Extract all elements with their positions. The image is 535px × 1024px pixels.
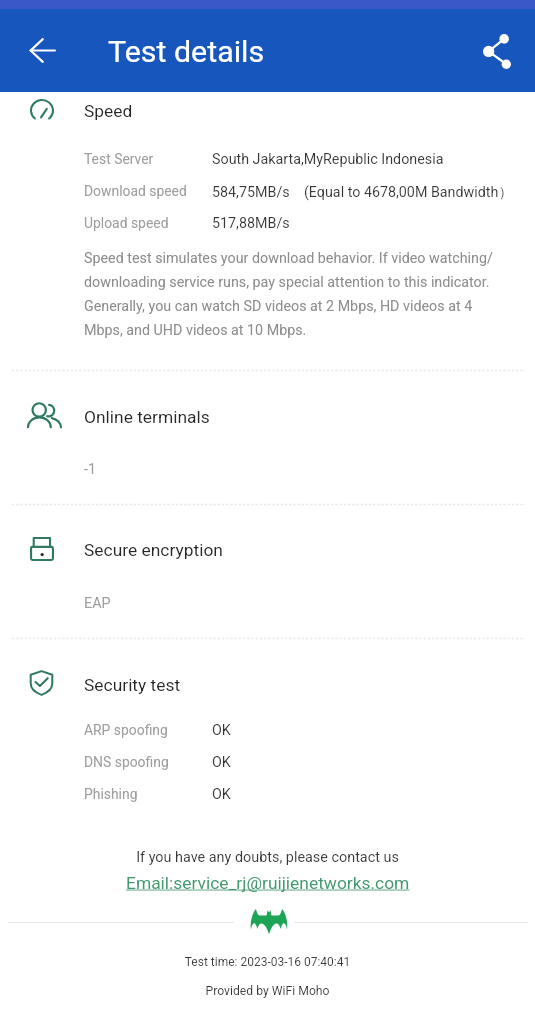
staticText: Secure encryption <box>84 540 223 560</box>
staticText: Test details <box>108 34 265 70</box>
staticText: Download speed <box>84 183 187 199</box>
staticText: 517,88MB/s <box>212 215 290 232</box>
staticText: Phishing <box>84 786 138 802</box>
button[interactable]: Share <box>474 28 519 74</box>
staticText: Upload speed <box>84 215 169 231</box>
staticText: ARP spoofing <box>84 722 168 738</box>
staticText: Test Server <box>84 151 154 167</box>
staticText: 584,75MB/s (Equal to 4678,00M Bandwidth） <box>212 183 513 201</box>
staticText: Security test <box>84 675 181 695</box>
staticText: OK <box>212 754 231 771</box>
staticText: Online terminals <box>84 407 210 427</box>
staticText: Speed <box>84 101 133 121</box>
staticText: Provided by WiFi Moho <box>0 984 535 998</box>
staticText: If you have any doubts, please contact u… <box>0 849 535 866</box>
staticText: Speed test simulates your download behav… <box>84 250 493 339</box>
staticText: Test time: 2023-03-16 07:40:41 <box>0 955 535 969</box>
button[interactable]: Back <box>19 27 65 73</box>
staticText: OK <box>212 786 231 803</box>
staticText: OK <box>212 722 231 739</box>
staticText: DNS spoofing <box>84 754 169 770</box>
button[interactable]: Email:service_rj@ruijienetworks.com <box>126 873 410 893</box>
staticText: South Jakarta,MyRepublic Indonesia <box>212 151 444 168</box>
staticText: -1 <box>84 461 97 478</box>
staticText: EAP <box>84 595 111 612</box>
